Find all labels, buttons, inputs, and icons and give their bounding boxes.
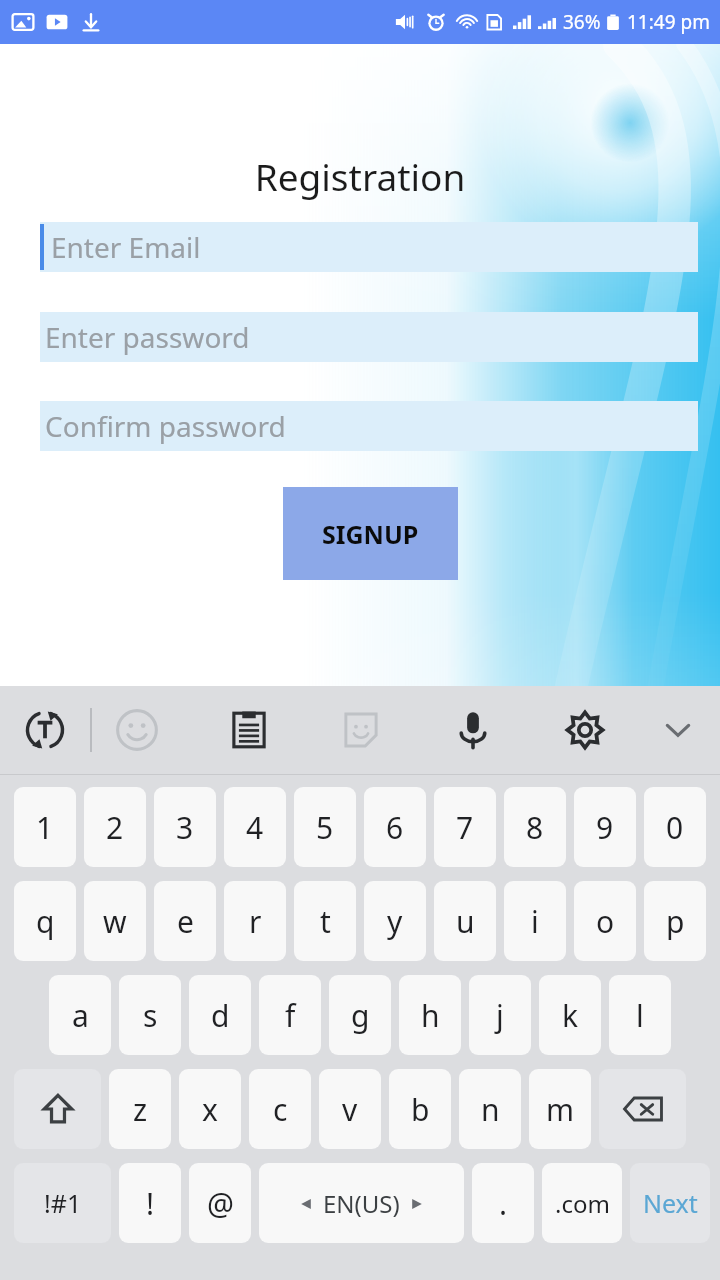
staticText: Enter password [45,318,250,356]
staticText: d [211,995,230,1036]
button[interactable]: 7 [434,787,496,867]
staticText: 4 [246,807,264,848]
button[interactable]: 4 [224,787,286,867]
button[interactable]: y [364,881,426,961]
staticText: @ [207,1183,234,1224]
staticText: q [36,901,55,942]
button[interactable]: Enter password [40,312,698,362]
button[interactable]: 1 [14,787,76,867]
staticText: r [249,901,262,942]
button[interactable]: b [389,1069,451,1149]
staticText: l [636,995,644,1036]
button[interactable]: Keyboard settings [554,699,616,761]
button[interactable]: t [294,881,356,961]
button[interactable]: 9 [574,787,636,867]
staticText: 3 [176,807,194,848]
staticText: Enter Email [51,228,201,266]
button[interactable]: j [469,975,531,1055]
staticText: .com [555,1187,610,1220]
staticText: t [320,901,331,942]
button[interactable]: Hide keyboard [650,702,706,758]
button[interactable]: i [504,881,566,961]
staticText: a [72,995,89,1036]
button[interactable]: w [84,881,146,961]
staticText: x [202,1089,218,1130]
staticText: !#1 [44,1186,82,1220]
button[interactable]: o [574,881,636,961]
button[interactable]: @ [189,1163,251,1243]
staticText: SIGNUP [322,517,419,551]
button[interactable]: q [14,881,76,961]
button[interactable]: Stickers [330,699,392,761]
staticText: i [531,901,539,942]
staticText: Registration [0,151,720,201]
staticText: w [103,901,127,942]
button[interactable]: Backspace [599,1069,686,1149]
staticText: y [387,901,403,942]
staticText: v [342,1089,358,1130]
staticText: e [177,901,194,942]
button[interactable]: a [49,975,111,1055]
staticText: EN(US) [323,1187,400,1220]
button[interactable]: m [529,1069,591,1149]
button[interactable]: 5 [294,787,356,867]
staticText: 8 [526,807,544,848]
button[interactable]: l [609,975,671,1055]
button[interactable]: Emoji [106,699,168,761]
button[interactable]: n [459,1069,521,1149]
button[interactable]: Enter Email [40,222,698,272]
staticText: Confirm password [45,407,286,445]
button[interactable]: e [154,881,216,961]
button[interactable]: f [259,975,321,1055]
staticText: s [143,995,158,1036]
button[interactable]: u [434,881,496,961]
button[interactable]: x [179,1069,241,1149]
staticText: j [496,995,504,1036]
staticText: ! [146,1183,155,1224]
staticText: o [596,901,615,942]
button[interactable]: Voice input [442,699,504,761]
staticText: 5 [316,807,334,848]
button[interactable]: k [539,975,601,1055]
staticText: 9 [596,807,614,848]
staticText: 36% [563,9,601,35]
button[interactable]: v [319,1069,381,1149]
button[interactable]: 8 [504,787,566,867]
button[interactable]: ! [119,1163,181,1243]
staticText: z [133,1089,148,1130]
button[interactable]: d [189,975,251,1055]
button[interactable]: Next [630,1163,710,1243]
button[interactable]: Shift [14,1069,101,1149]
staticText: 0 [666,807,684,848]
button[interactable]: SIGNUP [283,487,458,580]
button[interactable]: . [472,1163,534,1243]
button[interactable]: !#1 [14,1163,111,1243]
button[interactable]: z [109,1069,171,1149]
button[interactable]: 6 [364,787,426,867]
button[interactable]: r [224,881,286,961]
button[interactable]: h [399,975,461,1055]
button[interactable]: Translate [14,699,76,761]
button[interactable]: 2 [84,787,146,867]
staticText: . [499,1183,508,1224]
staticText: n [481,1089,500,1130]
button[interactable]: s [119,975,181,1055]
button[interactable]: g [329,975,391,1055]
staticText: 1 [36,807,54,848]
staticText: 2 [106,807,124,848]
staticText: Next [643,1186,698,1220]
button[interactable]: Confirm password [40,401,698,451]
staticText: u [456,901,475,942]
button[interactable]: 3 [154,787,216,867]
button[interactable]: .com [542,1163,622,1243]
staticText: p [666,901,685,942]
staticText: m [546,1089,575,1130]
button[interactable]: EN(US) [259,1163,464,1243]
button[interactable]: c [249,1069,311,1149]
staticText: b [411,1089,430,1130]
button[interactable]: 0 [644,787,706,867]
button[interactable]: Clipboard [218,699,280,761]
staticText: 6 [386,807,404,848]
staticText: 7 [456,807,474,848]
button[interactable]: p [644,881,706,961]
